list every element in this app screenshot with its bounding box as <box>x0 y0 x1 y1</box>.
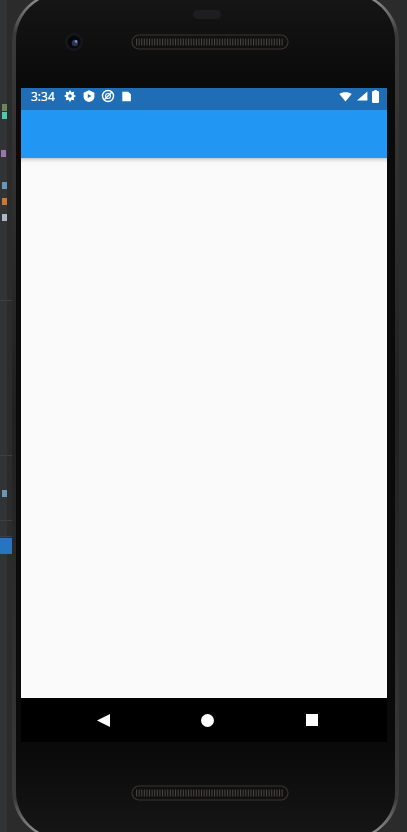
button[interactable]: Back <box>81 698 125 742</box>
staticText: 3:34 <box>31 88 55 104</box>
button[interactable]: Home <box>185 698 229 742</box>
button[interactable]: Recent apps <box>290 698 334 742</box>
